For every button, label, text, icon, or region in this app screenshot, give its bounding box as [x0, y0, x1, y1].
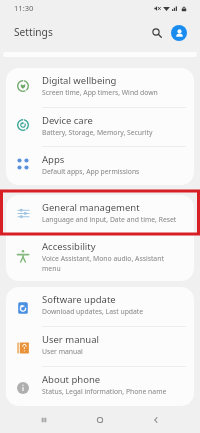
staticText: Download updates, Last update — [42, 307, 144, 316]
staticText: Device care — [42, 114, 93, 127]
staticText: Apps — [42, 153, 65, 166]
staticText: Software update — [42, 293, 116, 306]
button[interactable]: Software update — [6, 287, 194, 326]
staticText: About phone — [42, 373, 101, 386]
staticText: 11:30 — [14, 3, 34, 13]
staticText: Accessibility — [42, 240, 96, 253]
button[interactable]: Recent apps — [32, 408, 56, 432]
staticText: Language and input, Date and time, Reset — [42, 215, 177, 224]
button[interactable]: Digital wellbeing — [6, 68, 194, 107]
button[interactable]: Search — [147, 23, 167, 43]
staticText: User manual — [42, 347, 83, 356]
staticText: Default apps, App permissions — [42, 167, 140, 176]
button[interactable]: About phone — [6, 367, 194, 406]
button[interactable]: Device care — [6, 108, 194, 146]
button[interactable]: Accessibility — [6, 235, 194, 281]
staticText: Settings — [14, 25, 53, 39]
staticText: Battery, Storage, Memory, Security — [42, 128, 153, 137]
button[interactable]: Back — [144, 408, 168, 432]
button[interactable]: User manual — [6, 327, 194, 366]
staticText: Voice Assistant, Mono audio, Assistant m… — [42, 254, 178, 273]
button[interactable]: General management — [6, 195, 194, 234]
staticText: General management — [42, 201, 140, 214]
button[interactable]: Home — [88, 408, 112, 432]
staticText: User manual — [42, 333, 99, 346]
staticText: Screen time, App timers, Wind down — [42, 88, 158, 97]
button[interactable]: Account — [171, 25, 187, 41]
staticText: Status, Legal information, Phone name — [42, 387, 167, 396]
staticText: Digital wellbeing — [42, 74, 117, 87]
button[interactable]: Apps — [6, 147, 194, 185]
